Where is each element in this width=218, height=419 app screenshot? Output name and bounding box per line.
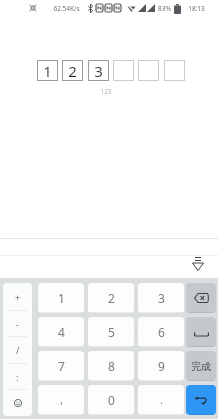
staticText: 62.54K/s [53, 4, 80, 13]
button[interactable]: 完成 [186, 351, 216, 381]
button[interactable]: , [38, 385, 84, 415]
button[interactable] [3, 389, 32, 416]
staticText: : [16, 371, 19, 383]
button[interactable]: 0 [88, 385, 134, 415]
staticText: 4 [58, 324, 65, 340]
button[interactable]: 3 [138, 283, 184, 313]
staticText: 完成 [191, 360, 211, 373]
button[interactable]: 7 [38, 351, 84, 381]
staticText: 9 [158, 358, 165, 374]
button[interactable]: . [138, 385, 184, 415]
button[interactable] [186, 283, 216, 313]
staticText: 1 [58, 290, 65, 306]
staticText: 3 [158, 290, 165, 306]
button[interactable] [186, 385, 216, 415]
staticText: 123 [100, 87, 112, 96]
button[interactable]: 1 [38, 283, 84, 313]
button[interactable]: : [3, 363, 32, 390]
staticText: 1 [43, 61, 52, 81]
staticText: 18:13 [188, 4, 205, 13]
staticText: 0 [108, 392, 115, 408]
button[interactable] [186, 317, 216, 347]
staticText: 2 [108, 290, 115, 306]
button[interactable]: 8 [88, 351, 134, 381]
staticText: 2 [68, 61, 77, 81]
button[interactable]: 4 [38, 317, 84, 347]
staticText: . [160, 393, 163, 407]
staticText: 5 [108, 324, 115, 340]
button[interactable] [190, 256, 208, 276]
staticText: - [16, 318, 19, 330]
button[interactable]: 5 [88, 317, 134, 347]
button[interactable]: 9 [138, 351, 184, 381]
staticText: 7 [58, 358, 65, 374]
staticText: + [15, 291, 21, 303]
button[interactable]: - [3, 310, 32, 337]
staticText: 3 [94, 61, 103, 81]
button[interactable]: / [3, 336, 32, 363]
staticText: 6 [158, 324, 165, 340]
staticText: , [60, 393, 63, 407]
button[interactable]: 2 [88, 283, 134, 313]
button[interactable]: + [3, 283, 32, 310]
staticText: 83% [158, 4, 171, 13]
button[interactable]: 6 [138, 317, 184, 347]
staticText: 8 [108, 358, 115, 374]
staticText: / [16, 344, 20, 356]
